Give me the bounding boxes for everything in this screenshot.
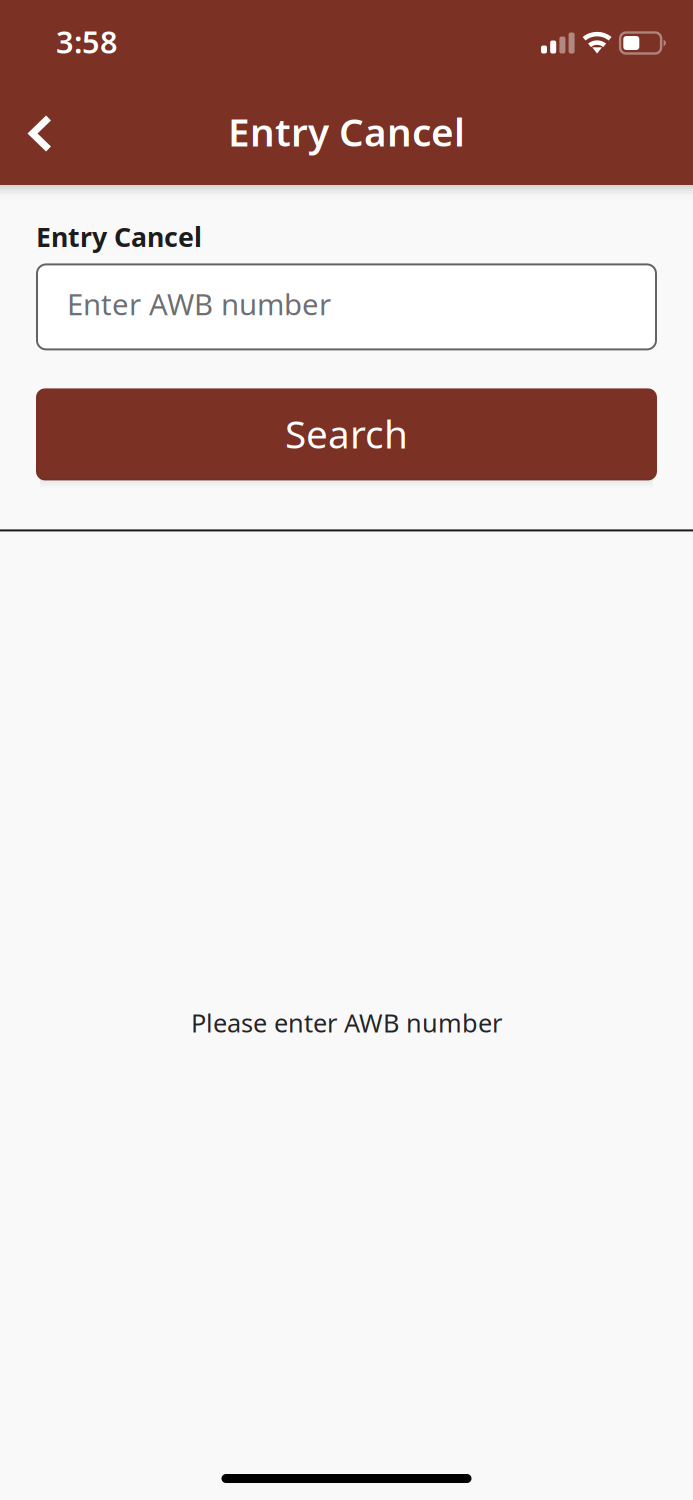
button[interactable]: Enter AWB number [36,263,657,350]
staticText: Enter AWB number [67,284,331,323]
staticText: Search [285,408,408,459]
staticText: Entry Cancel [228,106,465,157]
staticText: Please enter AWB number [191,1006,502,1039]
staticText: 3:58 [56,21,118,62]
staticText: Entry Cancel [36,219,202,254]
button[interactable]: Search [36,388,657,480]
button[interactable]: Back [0,103,95,169]
